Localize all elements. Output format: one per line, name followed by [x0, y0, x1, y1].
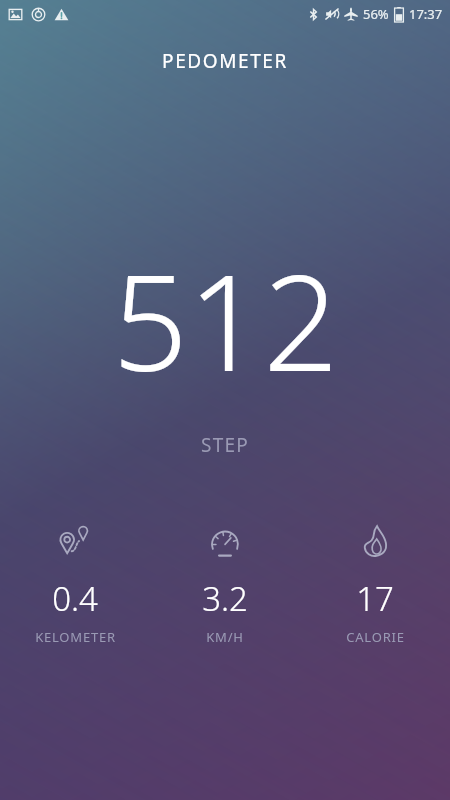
other: Calories burned: [358, 524, 392, 558]
staticText: 56%: [363, 5, 389, 23]
staticText: KM/H: [206, 628, 244, 646]
other: Distance in kilometers: [58, 524, 92, 558]
staticText: STEP: [201, 432, 249, 458]
other: Speed in kilometers per hour: [208, 524, 242, 558]
staticText: KELOMETER: [35, 628, 116, 646]
staticText: 0.4: [52, 576, 98, 621]
staticText: PEDOMETER: [162, 48, 288, 74]
button[interactable]: Distance in kilometers: [0, 520, 150, 650]
button[interactable]: Speed in kilometers per hour: [150, 520, 300, 650]
staticText: 17:37: [409, 5, 443, 23]
staticText: 512: [112, 230, 339, 410]
staticText: 17: [356, 576, 394, 621]
staticText: CALORIE: [346, 628, 405, 646]
staticText: 3.2: [202, 576, 248, 621]
button[interactable]: Calories burned: [300, 520, 450, 650]
